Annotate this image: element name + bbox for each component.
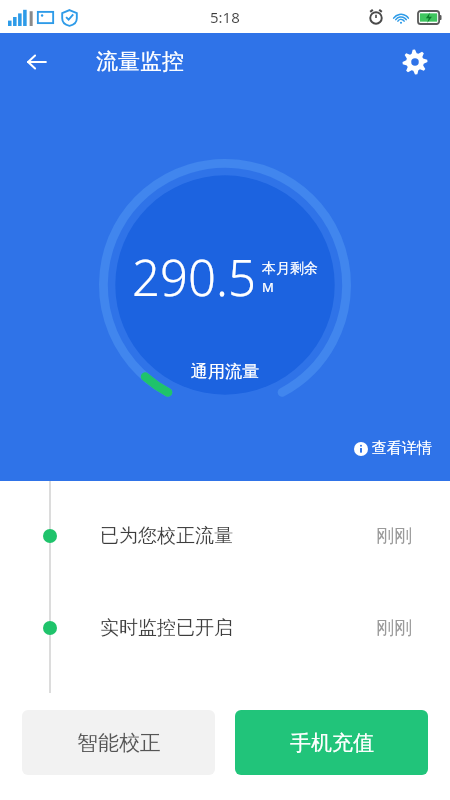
- staticText: 290.5: [132, 244, 256, 311]
- button[interactable]: 智能校正: [22, 710, 215, 775]
- staticText: 智能校正: [77, 730, 161, 756]
- button[interactable]: 查看详情: [350, 436, 436, 461]
- staticText: 流量监控: [96, 48, 184, 76]
- staticText: 实时监控已开启: [100, 616, 233, 640]
- button[interactable]: Settings: [392, 39, 438, 85]
- button[interactable]: 已为您校正流量: [0, 521, 450, 551]
- button[interactable]: Back: [14, 39, 60, 85]
- staticText: 本月剩余: [262, 260, 318, 278]
- staticText: 通用流量: [191, 361, 259, 382]
- staticText: 刚刚: [376, 525, 412, 548]
- button[interactable]: 手机充值: [235, 710, 428, 775]
- staticText: 刚刚: [376, 617, 412, 640]
- button[interactable]: 实时监控已开启: [0, 613, 450, 643]
- staticText: 5:18: [210, 7, 240, 27]
- staticText: 手机充值: [290, 730, 374, 756]
- staticText: 已为您校正流量: [100, 524, 233, 548]
- staticText: M: [262, 278, 274, 296]
- staticText: 查看详情: [372, 439, 432, 458]
